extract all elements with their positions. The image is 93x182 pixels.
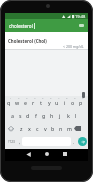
button[interactable]: c [33, 122, 41, 135]
staticText: i [64, 99, 66, 106]
staticText: cholesterol [9, 23, 33, 29]
staticText: ?123 [8, 140, 15, 144]
button[interactable]: t [37, 96, 45, 109]
staticText: c [36, 125, 39, 132]
button[interactable]: d [24, 109, 32, 122]
staticText: x [28, 125, 31, 132]
button[interactable] [73, 122, 86, 135]
button[interactable]: , [17, 135, 22, 148]
button[interactable]: k [64, 109, 72, 122]
button[interactable]: g [40, 109, 48, 122]
staticText: 19:48 [75, 14, 86, 19]
staticText: 9 [74, 96, 76, 99]
staticText: q [7, 99, 11, 106]
button[interactable]: j [56, 109, 64, 122]
staticText: 8 [66, 96, 68, 99]
button[interactable]: h [48, 109, 56, 122]
staticText: g [42, 112, 46, 119]
staticText: z [20, 125, 23, 132]
staticText: 2 [18, 96, 20, 99]
button[interactable]: r [29, 96, 37, 109]
button[interactable]: x [25, 122, 33, 135]
staticText: < 200 mg/dL [63, 44, 84, 49]
staticText: 1 [10, 96, 12, 99]
button[interactable]: q [5, 96, 13, 109]
staticText: 3 [26, 96, 28, 99]
staticText: 5 [42, 96, 44, 99]
staticText: e [24, 99, 27, 106]
button[interactable]: e [21, 96, 29, 109]
button[interactable] [76, 135, 88, 148]
button[interactable]: cholesterol [9, 19, 35, 32]
button[interactable]: y [45, 96, 53, 109]
staticText: s [19, 112, 22, 119]
staticText: n [59, 125, 63, 132]
button[interactable]: . [71, 135, 76, 148]
button[interactable]: s [16, 109, 24, 122]
button[interactable]: i [61, 96, 69, 109]
button[interactable]: m [65, 122, 73, 135]
staticText: 7 [58, 96, 60, 99]
staticText: h [50, 112, 54, 119]
staticText: r [32, 99, 35, 106]
button[interactable]: p [77, 96, 85, 109]
button[interactable] [22, 150, 34, 158]
staticText: , [19, 139, 21, 145]
button[interactable]: f [32, 109, 40, 122]
staticText: Cholesterol (Chol) [8, 38, 47, 44]
staticText: y [48, 99, 51, 106]
button[interactable]: Cholesterol (Chol) [5, 32, 88, 50]
button[interactable]: v [41, 122, 49, 135]
staticText: 6 [50, 96, 52, 99]
button[interactable]: z [17, 122, 25, 135]
staticText: f [35, 112, 37, 119]
staticText: v [44, 125, 47, 132]
button[interactable]: b [49, 122, 57, 135]
staticText: 4 [34, 96, 36, 99]
button[interactable] [5, 122, 17, 135]
staticText: o [71, 99, 75, 106]
staticText: a [11, 112, 14, 119]
staticText: u [55, 99, 59, 106]
staticText: b [51, 125, 55, 132]
button[interactable] [41, 150, 53, 158]
staticText: . [73, 139, 75, 145]
staticText: m [67, 125, 72, 132]
button[interactable] [79, 24, 84, 27]
button[interactable]: l [72, 109, 80, 122]
button[interactable]: ?123 [5, 135, 17, 148]
staticText: j [59, 112, 61, 119]
button[interactable]: n [57, 122, 65, 135]
button[interactable] [59, 150, 71, 158]
button[interactable]: o [69, 96, 77, 109]
staticText: k [67, 112, 70, 119]
staticText: p [79, 99, 83, 106]
staticText: t [40, 99, 42, 106]
staticText: 0 [82, 96, 84, 99]
button[interactable]: u [53, 96, 61, 109]
button[interactable]: a [8, 109, 16, 122]
button[interactable]: w [13, 96, 21, 109]
staticText: w [15, 99, 20, 106]
staticText: d [26, 112, 30, 119]
staticText: l [75, 112, 77, 119]
